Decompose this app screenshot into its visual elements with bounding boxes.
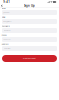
staticText: Jane Doe xyxy=(3,12,9,13)
staticText: Cupertino xyxy=(3,48,10,49)
button[interactable]: Cupertino xyxy=(2,46,57,51)
staticText: Sign Up xyxy=(24,4,35,7)
staticText: Phone xyxy=(2,34,7,36)
button[interactable]: Back xyxy=(0,4,4,7)
staticText: Email xyxy=(2,16,5,18)
staticText: Name xyxy=(2,7,6,9)
button[interactable]: Jane Doe xyxy=(2,10,57,15)
staticText: Password xyxy=(2,25,10,27)
staticText: Required xyxy=(3,30,10,31)
button[interactable]: Create Account xyxy=(2,55,57,62)
staticText: Create Account xyxy=(23,58,36,59)
button[interactable]: Required xyxy=(2,28,57,33)
staticText: jane@me.co xyxy=(3,21,11,22)
staticText: 9:41 xyxy=(3,0,10,4)
staticText: 555 0134 xyxy=(3,39,10,40)
button[interactable]: jane@me.co xyxy=(2,19,57,24)
staticText: Address xyxy=(2,43,9,45)
